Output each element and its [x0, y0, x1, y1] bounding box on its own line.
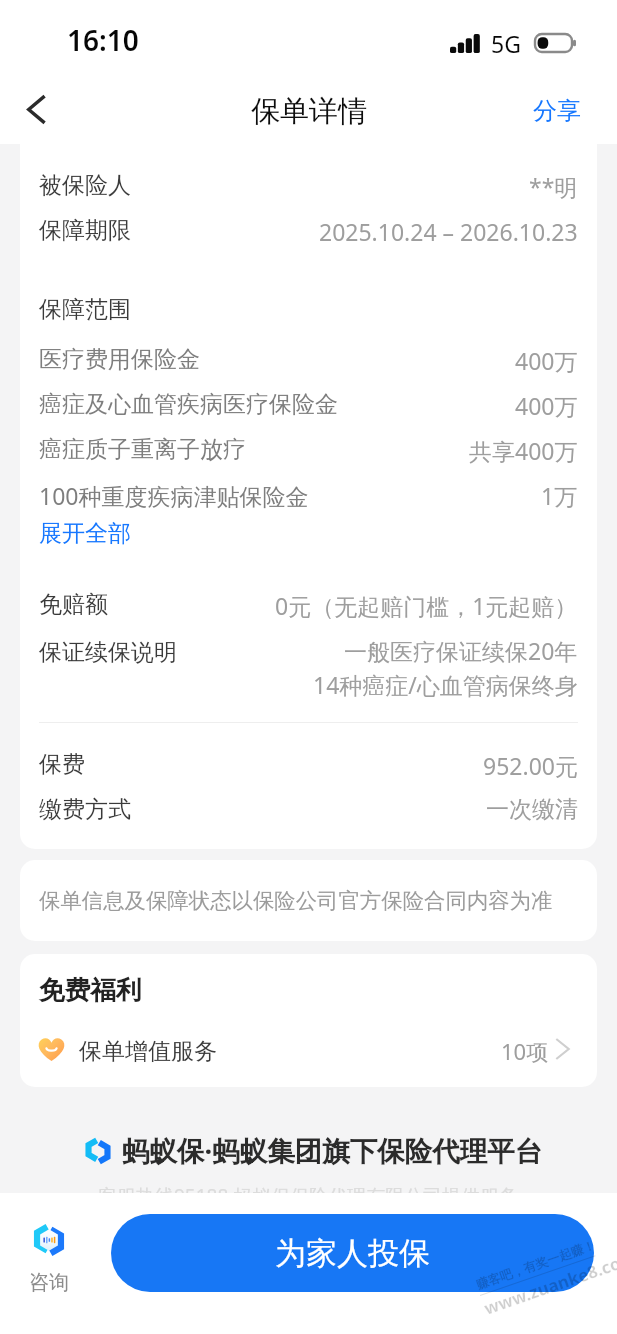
staticText: 为家人投保 — [275, 1234, 430, 1273]
staticText: 保障范围 — [39, 295, 131, 324]
staticText: 客服热线95188 蚂蚁保保险代理有限公司提供服务 — [98, 1183, 519, 1193]
staticText: 蚂蚁保·蚂蚁集团旗下保险代理平台 — [122, 1132, 543, 1170]
staticText: 免赔额 — [39, 590, 108, 619]
staticText: 保单信息及保障状态以保险公司官方保险合同内容为准 — [39, 887, 553, 914]
staticText: 一般医疗保证续保20年 — [344, 635, 578, 666]
staticText: 保单增值服务 — [79, 1037, 217, 1066]
staticText: 免费福利 — [39, 974, 142, 1006]
staticText: 保障期限 — [39, 216, 131, 245]
button[interactable]: 分享 — [497, 78, 617, 144]
staticText: 100种重度疾病津贴保险金 — [39, 480, 309, 511]
staticText: 一次缴清 — [486, 795, 578, 824]
staticText: 0元（无起赔门槛，1元起赔） — [275, 590, 578, 621]
staticText: 共享400万 — [469, 435, 578, 466]
button[interactable]: 保单增值服务 — [20, 1025, 597, 1077]
staticText: 保证续保说明 — [39, 638, 177, 667]
staticText: 咨询 — [29, 1270, 69, 1295]
staticText: **明 — [529, 171, 578, 202]
button[interactable]: 咨询 — [14, 1222, 84, 1295]
staticText: 1万 — [541, 480, 578, 511]
staticText: 16:10 — [67, 21, 139, 59]
staticText: 5G — [491, 28, 521, 59]
staticText: 医疗费用保险金 — [39, 345, 200, 374]
button[interactable]: Back — [0, 78, 70, 144]
staticText: 2025.10.24 – 2026.10.23 — [319, 216, 578, 247]
staticText: 952.00元 — [483, 750, 578, 781]
staticText: 赚客吧，有奖一起赚！ — [474, 1237, 597, 1293]
staticText: 被保险人 — [39, 171, 131, 200]
button[interactable]: 为家人投保 — [111, 1214, 594, 1292]
staticText: 展开全部 — [39, 519, 131, 548]
button[interactable]: 展开全部 — [39, 519, 131, 548]
staticText: 癌症质子重离子放疗 — [39, 435, 246, 464]
staticText: 400万 — [515, 390, 578, 421]
staticText: 14种癌症/心血管病保终身 — [313, 669, 578, 700]
staticText: 癌症及心血管疾病医疗保险金 — [39, 390, 338, 419]
staticText: 保单详情 — [251, 93, 367, 130]
staticText: 保费 — [39, 750, 85, 779]
staticText: 缴费方式 — [39, 795, 131, 824]
staticText: 分享 — [533, 96, 581, 126]
staticText: www.zuanke8.com — [481, 1246, 617, 1320]
staticText: 400万 — [515, 345, 578, 376]
staticText: 10项 — [501, 1036, 549, 1066]
